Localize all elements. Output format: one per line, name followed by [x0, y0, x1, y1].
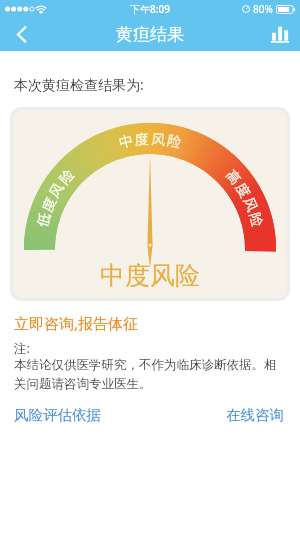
staticText: 本次黄疸检查结果为: [14, 75, 144, 94]
staticText: 本结论仅供医学研究，不作为临床诊断依据。相关问题请咨询专业医生。 [14, 357, 280, 392]
button[interactable]: 风险评估依据 [14, 406, 101, 424]
button[interactable]: 立即咨询,报告体征 [14, 313, 139, 333]
staticText: 中度风险 [100, 260, 200, 291]
staticText: 注: [14, 340, 30, 357]
staticText: 下午8:09 [130, 2, 170, 16]
staticText: 80% [253, 2, 273, 16]
button[interactable]: Back [0, 18, 42, 51]
button[interactable]: Statistics [260, 18, 300, 51]
button[interactable]: 在线咨询 [226, 406, 284, 424]
staticText: 黄疸结果 [116, 24, 184, 45]
